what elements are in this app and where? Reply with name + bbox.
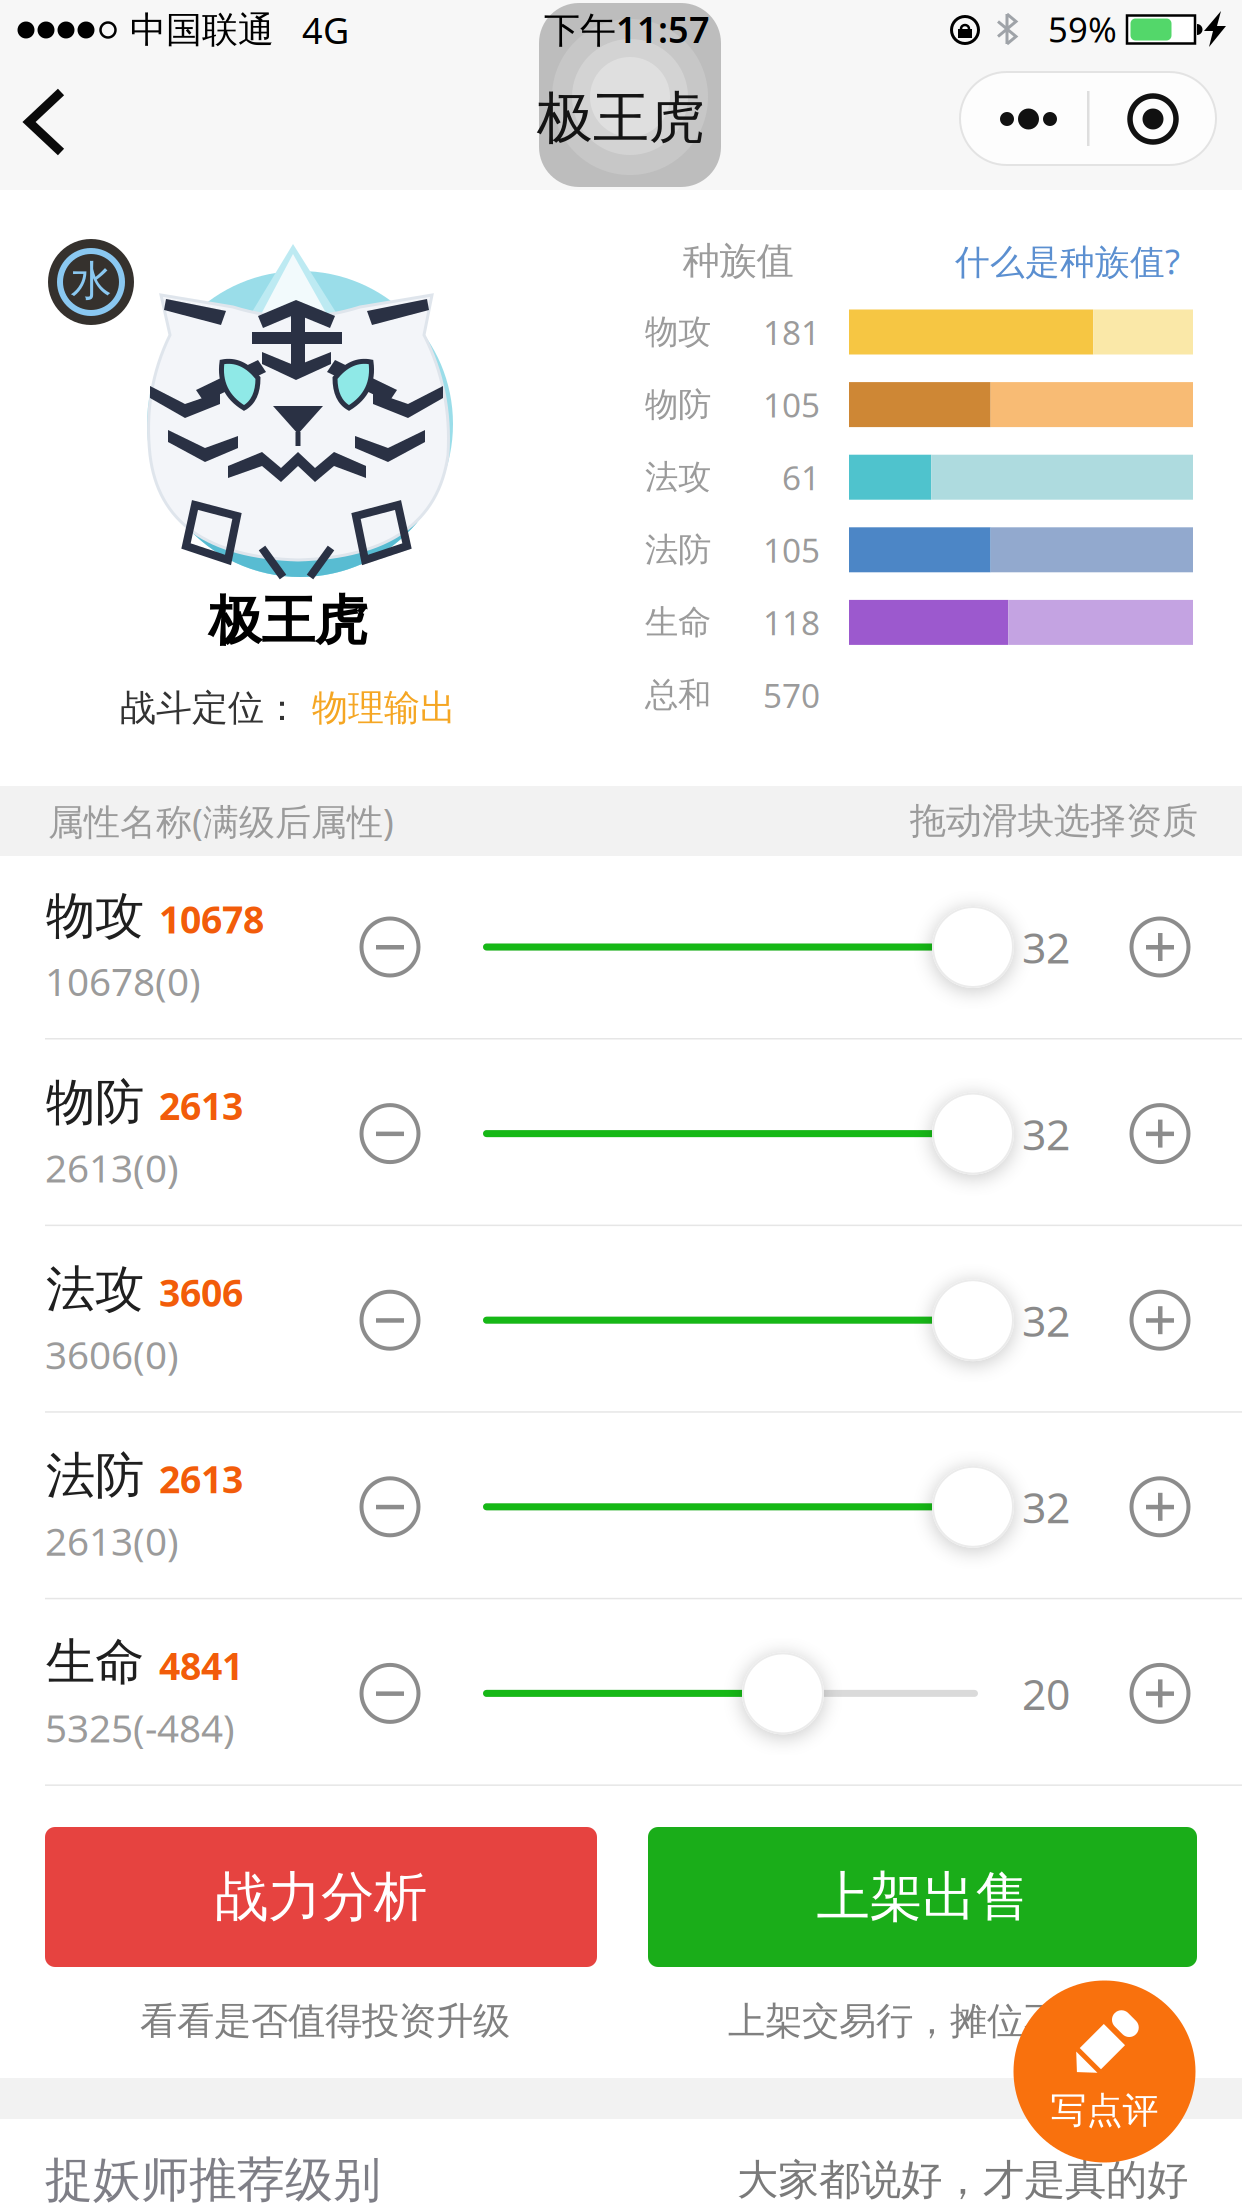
staticText: 上架出售 bbox=[816, 1864, 1028, 1930]
staticText: 2613(0) bbox=[45, 1142, 179, 1193]
button[interactable]: 什么是种族值? bbox=[840, 226, 1180, 296]
staticText: 2613 bbox=[159, 1454, 243, 1504]
staticText: 物理输出 bbox=[312, 686, 456, 730]
staticText: 法攻 bbox=[645, 457, 711, 498]
staticText: 59% bbox=[1048, 6, 1117, 52]
staticText: 法防 bbox=[645, 529, 711, 570]
staticText: 4841 bbox=[159, 1641, 243, 1690]
staticText: 战斗定位： bbox=[120, 686, 300, 730]
staticText: 法防 bbox=[46, 1445, 144, 1506]
staticText: 570 bbox=[763, 673, 820, 717]
staticText: 32 bbox=[1022, 1105, 1070, 1162]
staticText: 种族值 bbox=[682, 238, 793, 284]
staticText: 什么是种族值? bbox=[955, 238, 1180, 284]
button[interactable]: 增加 bbox=[1115, 902, 1205, 992]
button[interactable]: 返回 bbox=[3, 77, 93, 167]
staticText: 战力分析 bbox=[215, 1864, 427, 1930]
staticText: 法攻 bbox=[46, 1259, 144, 1319]
button[interactable]: 战力分析 bbox=[45, 1827, 597, 1967]
button[interactable]: 增加 bbox=[1115, 1089, 1205, 1179]
staticText: 物防 bbox=[645, 384, 711, 425]
button[interactable]: 更多 bbox=[960, 72, 1087, 165]
staticText: 极王虎 bbox=[537, 84, 705, 152]
staticText: 生命 bbox=[645, 602, 711, 643]
staticText: 10678(0) bbox=[45, 955, 201, 1007]
staticText: 10678 bbox=[159, 894, 264, 944]
staticText: 捉妖师推荐级别 bbox=[45, 2150, 381, 2208]
staticText: 2613(0) bbox=[45, 1515, 179, 1566]
staticText: 物攻 bbox=[645, 311, 711, 352]
staticText: 物攻 bbox=[46, 886, 144, 946]
button[interactable]: 增加 bbox=[1115, 1462, 1205, 1552]
staticText: 生命 bbox=[46, 1632, 144, 1693]
staticText: 中国联通 bbox=[130, 8, 274, 52]
staticText: 看看是否值得投资升级 bbox=[140, 1998, 510, 2044]
button[interactable]: 增加 bbox=[1115, 1648, 1205, 1738]
staticText: 属性名称(满级后属性) bbox=[48, 797, 394, 845]
staticText: 32 bbox=[1022, 919, 1070, 975]
staticText: 181 bbox=[763, 310, 820, 354]
staticText: 3606 bbox=[159, 1267, 243, 1317]
button[interactable]: 滑块 bbox=[932, 1466, 1014, 1548]
button[interactable]: 减少 bbox=[345, 1648, 435, 1738]
staticText: 物防 bbox=[46, 1072, 144, 1133]
button[interactable]: 滑块 bbox=[742, 1652, 824, 1734]
staticText: 上架交易行，摊位不错 bbox=[728, 1998, 1098, 2044]
staticText: 总和 bbox=[645, 674, 711, 715]
button[interactable]: 增加 bbox=[1115, 1275, 1205, 1365]
staticText: 拖动滑块选择资质 bbox=[910, 799, 1198, 843]
button[interactable]: 减少 bbox=[345, 902, 435, 992]
button[interactable]: 减少 bbox=[345, 1462, 435, 1552]
staticText: 3606(0) bbox=[45, 1328, 179, 1380]
staticText: 32 bbox=[1022, 1292, 1070, 1349]
staticText: 20 bbox=[1022, 1665, 1070, 1722]
staticText: 5325(-484) bbox=[45, 1702, 235, 1753]
staticText: 61 bbox=[782, 455, 820, 499]
button[interactable]: 关闭 bbox=[1089, 72, 1216, 165]
button[interactable]: 滑块 bbox=[932, 1279, 1014, 1361]
staticText: 2613 bbox=[159, 1081, 243, 1130]
staticText: 极王虎 bbox=[208, 588, 367, 654]
staticText: 105 bbox=[763, 382, 820, 427]
button[interactable]: 滑块 bbox=[932, 1093, 1014, 1175]
button[interactable]: 上架出售 bbox=[648, 1827, 1197, 1967]
staticText: 32 bbox=[1022, 1478, 1070, 1535]
button[interactable]: 滑块 bbox=[932, 906, 1014, 988]
staticText: 4G bbox=[302, 6, 349, 54]
staticText: 118 bbox=[763, 600, 820, 645]
staticText: 大家都说好，才是真的好 bbox=[737, 2155, 1188, 2205]
staticText: 写点评 bbox=[1050, 2088, 1158, 2133]
button[interactable]: 减少 bbox=[345, 1275, 435, 1365]
staticText: 105 bbox=[763, 528, 820, 572]
staticText: 水 bbox=[70, 256, 111, 306]
button[interactable]: 减少 bbox=[345, 1089, 435, 1179]
button[interactable]: 写点评 bbox=[1013, 1980, 1195, 2162]
staticText: 下午11:57 bbox=[544, 5, 710, 53]
